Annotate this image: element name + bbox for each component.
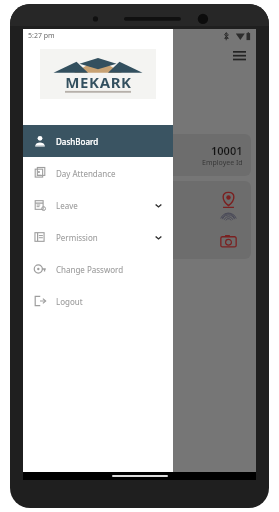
staticText: Change Password bbox=[56, 264, 124, 275]
staticText: Employee Id bbox=[202, 158, 243, 168]
staticText: DashBoard bbox=[56, 136, 99, 147]
staticText: 5:27 pm bbox=[28, 31, 55, 41]
button[interactable]: Logout bbox=[23, 285, 173, 317]
staticText: Good Evening 05:27 PM bbox=[29, 75, 132, 87]
button[interactable]: 10001 bbox=[28, 134, 251, 176]
button[interactable]: Camera bbox=[220, 233, 237, 250]
staticText: Logout bbox=[56, 296, 83, 307]
staticText: 10001 bbox=[211, 143, 243, 158]
button[interactable]: Fingerprint bbox=[220, 212, 237, 229]
staticText: Day Attendance bbox=[56, 168, 116, 179]
button[interactable]: Leave bbox=[23, 189, 173, 221]
staticText: Permission bbox=[56, 232, 98, 243]
button[interactable]: Location bbox=[220, 191, 237, 208]
button[interactable]: Change Password bbox=[23, 253, 173, 285]
button[interactable]: DashBoard bbox=[23, 125, 173, 157]
staticText: MEKARK bbox=[65, 72, 132, 92]
button[interactable]: Permission bbox=[23, 221, 173, 253]
button[interactable]: Open navigation menu bbox=[229, 46, 249, 66]
button[interactable]: Day Attendance bbox=[23, 157, 173, 189]
staticText: Tue, 10 Dec 2024 bbox=[29, 93, 118, 108]
staticText: Leave bbox=[56, 200, 78, 211]
